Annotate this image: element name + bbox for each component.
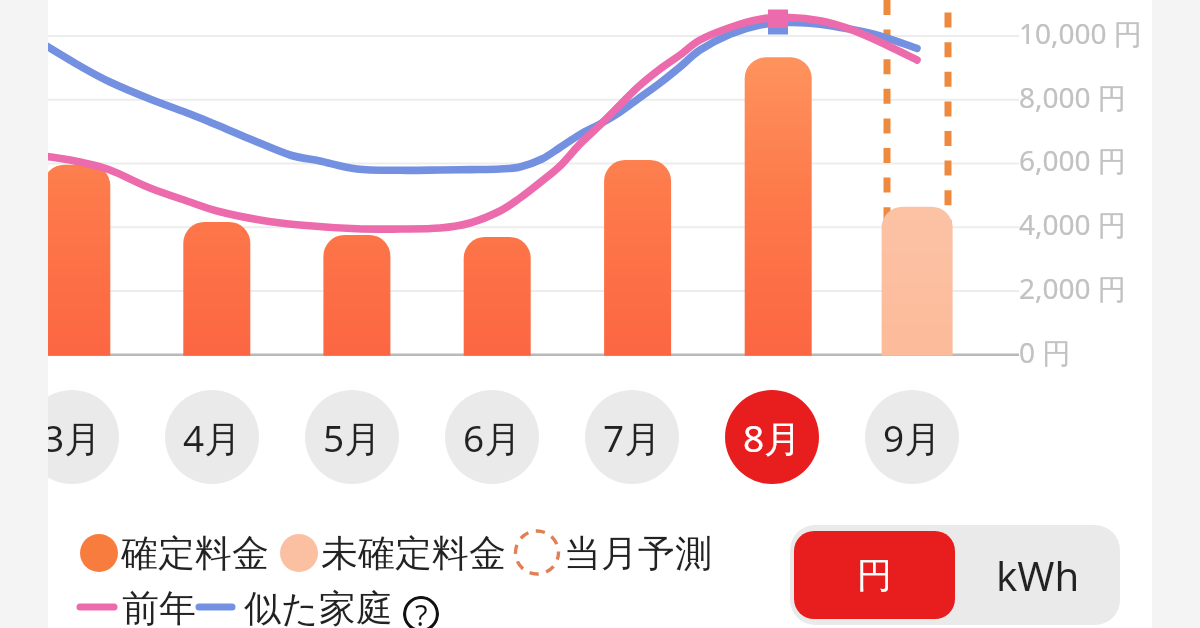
- staticText: 当月予測: [564, 530, 712, 577]
- staticText: 前年: [122, 585, 196, 628]
- staticText: 8,000 円: [1019, 78, 1126, 116]
- staticText: 4,000 円: [1019, 205, 1126, 243]
- staticText: 3月: [43, 412, 102, 463]
- button[interactable]: 7月: [585, 390, 679, 484]
- button[interactable]: 8月: [725, 390, 819, 484]
- staticText: 7月: [603, 412, 662, 463]
- staticText: 10,000 円: [1019, 14, 1142, 52]
- staticText: 6,000 円: [1019, 141, 1126, 179]
- staticText: 4月: [183, 412, 242, 463]
- staticText: 2,000 円: [1019, 269, 1126, 307]
- staticText: ?: [415, 596, 428, 628]
- button[interactable]: 5月: [305, 390, 399, 484]
- staticText: 確定料金: [121, 530, 269, 577]
- button[interactable]: Help: [403, 596, 439, 628]
- staticText: 8月: [743, 412, 802, 463]
- button[interactable]: kWh: [955, 531, 1120, 619]
- button[interactable]: 9月: [865, 390, 959, 484]
- staticText: 円: [857, 553, 892, 597]
- staticText: 0 円: [1019, 333, 1071, 371]
- staticText: 6月: [463, 412, 522, 463]
- staticText: 9月: [883, 412, 942, 463]
- staticText: 似た家庭: [244, 585, 393, 628]
- staticText: 未確定料金: [321, 530, 506, 577]
- button[interactable]: 6月: [445, 390, 539, 484]
- staticText: kWh: [996, 548, 1080, 602]
- button[interactable]: 3月: [25, 390, 119, 484]
- staticText: 5月: [323, 412, 382, 463]
- button[interactable]: 4月: [165, 390, 259, 484]
- button[interactable]: 円: [794, 531, 955, 619]
